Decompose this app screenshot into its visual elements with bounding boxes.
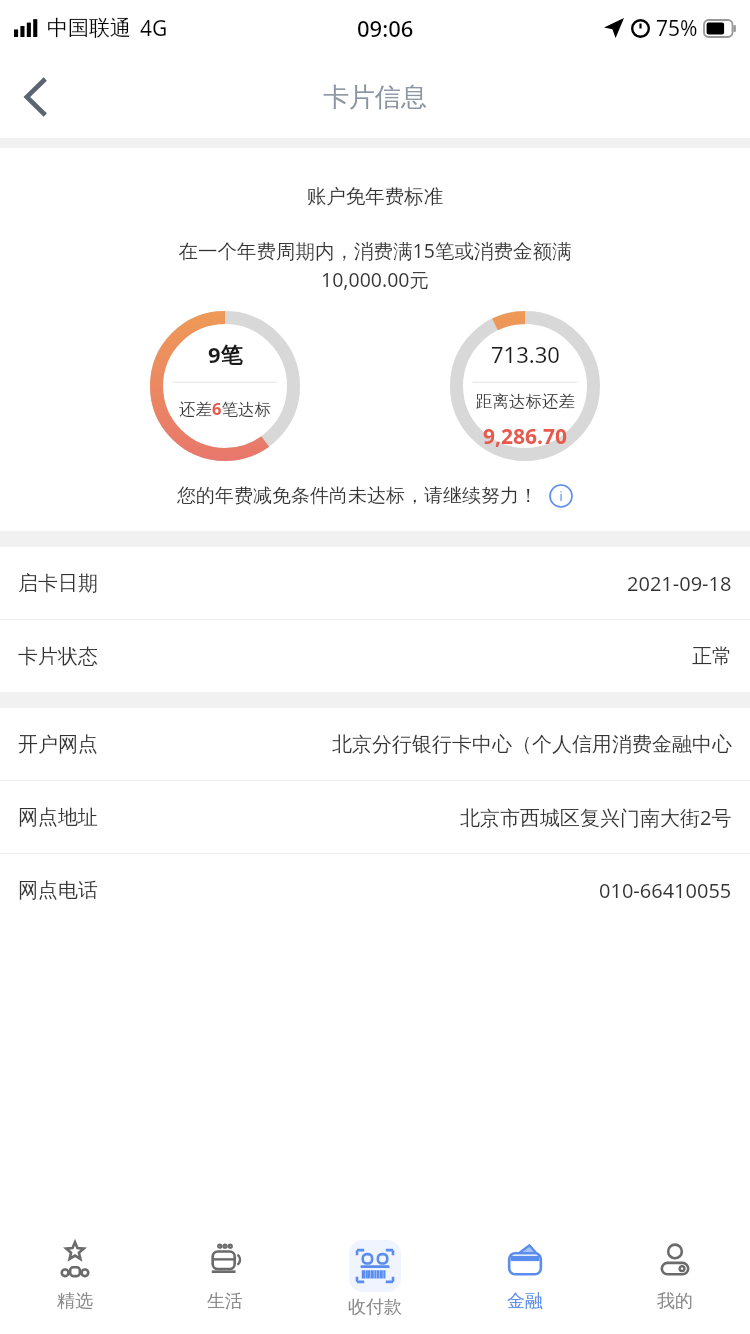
staticText: i: [559, 488, 563, 504]
button[interactable]: 生活: [150, 1230, 300, 1334]
staticText: 卡片信息: [323, 81, 427, 114]
staticText: 75%: [656, 14, 698, 43]
staticText: 生活: [207, 1290, 243, 1313]
staticText: 启卡日期: [18, 571, 98, 596]
staticText: 北京市西城区复兴门南大街2号: [460, 804, 732, 831]
staticText: 账户免年费标准: [0, 184, 750, 209]
staticText: 网点电话: [18, 878, 98, 903]
staticText: 您的年费减免条件尚未达标，请继续努力！: [177, 484, 538, 508]
staticText: 距离达标还差: [476, 391, 575, 412]
staticText: 卡片状态: [18, 644, 98, 669]
staticText: 010-66410055: [599, 877, 732, 904]
staticText: 713.30: [491, 339, 560, 369]
staticText: 在一个年费周期内，消费满15笔或消费金额满 10,000.00元: [28, 237, 722, 293]
button[interactable]: 开户网点: [0, 708, 750, 780]
staticText: 北京分行银行卡中心（个人信用消费金融中心: [332, 732, 732, 757]
staticText: 网点地址: [18, 805, 98, 830]
staticText: 开户网点: [18, 732, 98, 757]
staticText: 9笔: [208, 339, 243, 369]
button[interactable]: 金融: [450, 1230, 600, 1334]
button[interactable]: 启卡日期: [0, 547, 750, 619]
staticText: 9,286.70: [483, 422, 567, 451]
staticText: 中国联通: [47, 15, 131, 41]
staticText: 精选: [57, 1290, 93, 1313]
button[interactable]: 收付款: [300, 1230, 450, 1334]
staticText: 09:06: [357, 13, 414, 43]
button[interactable]: 我的: [600, 1230, 750, 1334]
button[interactable]: 网点地址: [0, 781, 750, 853]
button[interactable]: 精选: [0, 1230, 150, 1334]
staticText: 4G: [140, 14, 168, 43]
staticText: 金融: [507, 1290, 543, 1313]
staticText: 我的: [657, 1290, 693, 1313]
staticText: 2021-09-18: [627, 570, 732, 597]
button[interactable]: 卡片状态: [0, 620, 750, 692]
button[interactable]: Back: [0, 61, 72, 133]
button[interactable]: 网点电话: [0, 854, 750, 926]
button[interactable]: Info: [548, 483, 574, 509]
staticText: 还差6笔达标: [179, 397, 271, 420]
staticText: 正常: [692, 644, 732, 669]
staticText: 收付款: [348, 1296, 402, 1319]
